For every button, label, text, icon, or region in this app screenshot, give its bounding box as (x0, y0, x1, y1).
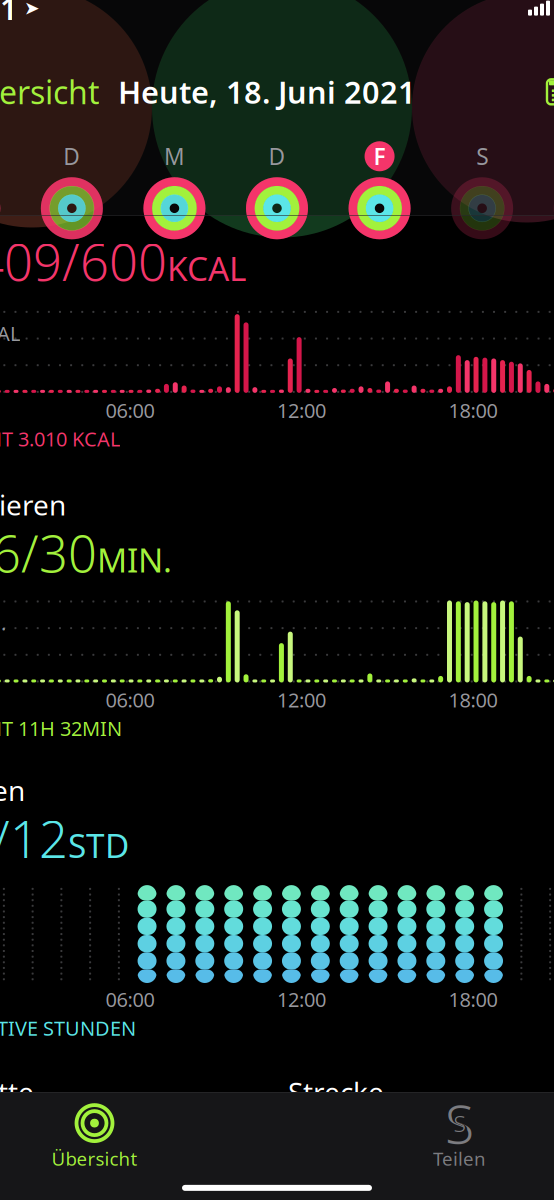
staticText: 12:00 (277, 397, 326, 423)
staticText: 06:00 (105, 986, 154, 1013)
button[interactable]: M (123, 141, 226, 239)
staticText: 21:01 (0, 0, 18, 28)
staticText: GESAMT 3.010 KCAL (0, 425, 120, 452)
staticText: 12:00 (277, 686, 326, 713)
staticText: Heute, 18. Juni 2021 (118, 71, 416, 112)
button[interactable]: D (21, 141, 123, 239)
staticText: GESAMT 11H 32MIN (0, 715, 122, 742)
staticText: F (374, 141, 386, 171)
staticText: 0 INAKTIVE STUNDEN (0, 1015, 136, 1041)
staticText: S (453, 1108, 465, 1138)
staticText: 18:00 (448, 686, 497, 713)
staticText: 18:00 (448, 397, 497, 423)
staticText: Übersicht (0, 71, 100, 113)
button[interactable]: Kalender (538, 72, 554, 112)
button[interactable]: S (533, 141, 554, 239)
staticText: 12:00 (277, 986, 326, 1013)
staticText: D (268, 141, 285, 171)
button[interactable]: M (0, 141, 21, 239)
staticText: S (445, 1088, 474, 1158)
staticText: Übersicht (51, 1146, 137, 1171)
button[interactable]: D (226, 141, 328, 239)
staticText: S (450, 1100, 469, 1146)
staticText: Stehen (0, 772, 25, 809)
staticText: MIN. (97, 537, 172, 582)
button[interactable]: F (328, 141, 431, 239)
staticText: M (164, 141, 185, 171)
staticText: Strecke (288, 1073, 384, 1110)
button[interactable]: S (431, 141, 533, 239)
staticText: S (476, 141, 488, 171)
staticText: 15 MIN. (0, 609, 6, 636)
staticText: Trainieren (0, 486, 66, 523)
staticText: 06:00 (105, 686, 154, 713)
staticText: 1.409/600 (0, 228, 167, 295)
staticText: 18:00 (448, 986, 497, 1013)
button[interactable]: S (277, 1097, 554, 1177)
staticText: 13/12 (0, 805, 68, 872)
staticText: Teilen (433, 1146, 486, 1171)
button[interactable]: ‹ (0, 52, 100, 131)
staticText: Schritte (0, 1073, 34, 1110)
button[interactable]: Übersicht (0, 1097, 277, 1177)
staticText: D (63, 141, 80, 171)
staticText: STD (68, 823, 129, 867)
staticText: ➤ (24, 0, 40, 19)
staticText: 06:00 (105, 397, 154, 423)
staticText: KCAL (167, 246, 246, 290)
staticText: 176/30 (0, 519, 97, 586)
staticText: 157 KCAL (0, 320, 20, 346)
